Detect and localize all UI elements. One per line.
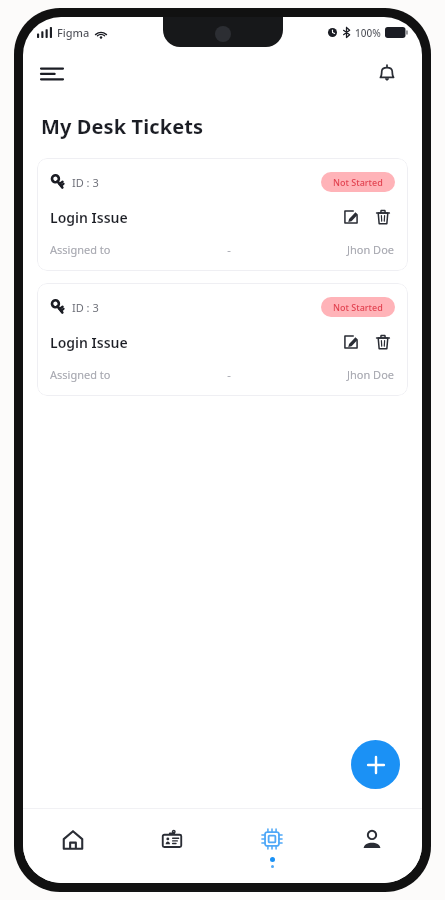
button[interactable]: Home — [23, 809, 122, 883]
button[interactable]: Not Started — [321, 297, 395, 317]
button[interactable]: ID : 3 — [37, 283, 408, 396]
staticText: My Desk Tickets — [41, 113, 204, 140]
staticText: ID : 3 — [72, 300, 99, 315]
button[interactable]: Delete ticket — [371, 330, 395, 354]
staticText: Jhon Doe — [347, 242, 395, 257]
staticText: Figma — [57, 25, 90, 40]
button[interactable]: Delete ticket — [371, 205, 395, 229]
staticText: Jhon Doe — [347, 367, 395, 382]
staticText: Not Started — [333, 176, 383, 188]
button[interactable]: Contacts — [122, 809, 222, 883]
button[interactable]: Tickets, selected — [222, 809, 322, 883]
staticText: 100% — [355, 26, 381, 40]
button[interactable]: ID : 3 — [37, 158, 408, 271]
button[interactable]: Menu — [41, 56, 75, 90]
staticText: ID : 3 — [72, 175, 99, 190]
button[interactable]: Notifications — [370, 56, 404, 90]
button[interactable]: Add ticket — [351, 740, 400, 789]
button[interactable]: Not Started — [321, 172, 395, 192]
staticText: Login Issue — [50, 208, 128, 227]
staticText: Login Issue — [50, 333, 128, 352]
staticText: Assigned to — [50, 367, 111, 382]
button[interactable]: Profile — [322, 809, 422, 883]
staticText: Assigned to — [50, 242, 111, 257]
staticText: Not Started — [333, 301, 383, 313]
button[interactable]: Edit ticket — [339, 330, 363, 354]
button[interactable]: Edit ticket — [339, 205, 363, 229]
